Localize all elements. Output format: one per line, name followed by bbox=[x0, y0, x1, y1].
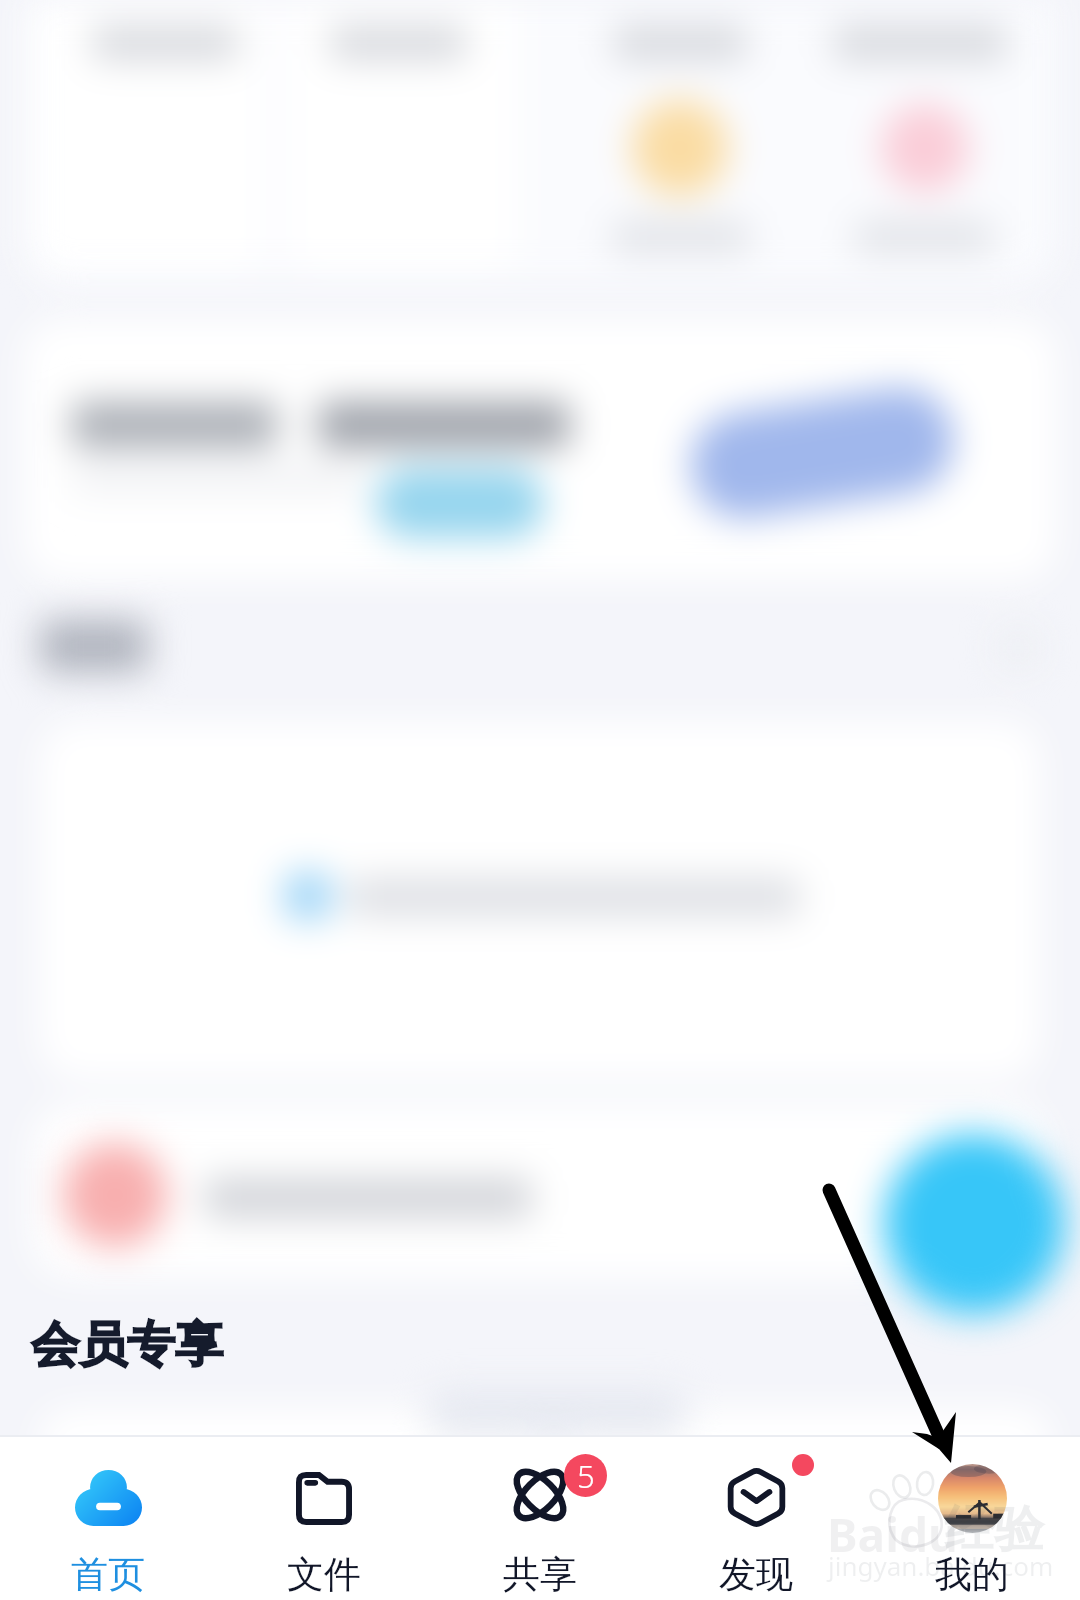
button[interactable]: 5 bbox=[432, 1437, 648, 1600]
staticText: 发现 bbox=[719, 1551, 793, 1598]
other: Profile avatar bbox=[938, 1464, 1007, 1533]
staticText: Baidu bbox=[827, 1503, 958, 1566]
button[interactable]: 发现 bbox=[648, 1437, 864, 1600]
staticText: 经验 bbox=[944, 1498, 1044, 1561]
button[interactable]: Storage notice bbox=[32, 1104, 1048, 1278]
staticText: 首页 bbox=[71, 1551, 145, 1598]
staticText: 文件 bbox=[287, 1551, 361, 1598]
staticText: jingyan.baidu.com bbox=[828, 1548, 1054, 1583]
button[interactable]: Recent files bbox=[40, 722, 1040, 1078]
staticText: 我的 bbox=[935, 1551, 1009, 1598]
button[interactable]: 文件 bbox=[216, 1437, 432, 1600]
button[interactable]: 首页 bbox=[0, 1437, 216, 1600]
button[interactable]: Quick actions bbox=[24, 0, 1056, 284]
button[interactable]: Profile avatar bbox=[864, 1437, 1080, 1600]
staticText: 5 bbox=[577, 1455, 595, 1497]
staticText: 共享 bbox=[503, 1551, 577, 1598]
staticText: 会员专享 bbox=[31, 1315, 223, 1375]
button[interactable]: Membership promotion banner bbox=[24, 320, 1056, 580]
